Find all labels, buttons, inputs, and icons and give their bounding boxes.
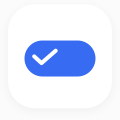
button[interactable]: Done	[24, 40, 95, 76]
